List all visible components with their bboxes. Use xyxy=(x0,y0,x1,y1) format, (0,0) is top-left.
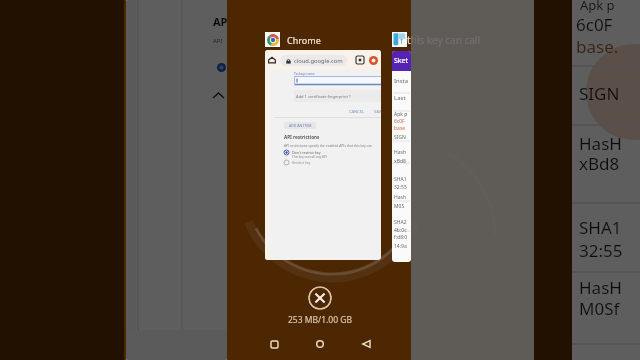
staticText: SHA1 xyxy=(579,216,622,239)
staticText: M0Sf xyxy=(579,297,620,320)
staticText: 4b:0c xyxy=(394,227,407,234)
staticText: Add 1 certificate fingerprint ? xyxy=(294,94,351,99)
staticText: base xyxy=(394,125,406,132)
staticText: 253 MB/1.00 GB xyxy=(255,314,385,326)
staticText: SAV xyxy=(374,109,381,114)
staticText: Package name xyxy=(294,72,315,76)
staticText: Last xyxy=(394,94,406,102)
staticText: 6c0F xyxy=(576,13,613,36)
staticText: HasH xyxy=(579,132,622,155)
staticText: SIGN xyxy=(394,134,406,141)
staticText: AP xyxy=(213,14,227,29)
staticText: CANCEL xyxy=(349,109,364,114)
staticText: Chrome xyxy=(287,34,321,46)
button[interactable]: Home xyxy=(308,332,332,356)
button[interactable]: Apk p xyxy=(572,0,640,360)
button[interactable]: cloud.google.com xyxy=(265,50,381,260)
staticText: xBd8 xyxy=(394,158,406,165)
staticText: Hash xyxy=(394,149,406,156)
staticText: API restrictions xyxy=(284,134,320,140)
button[interactable]: Recents xyxy=(262,332,286,356)
staticText: Apk p xyxy=(580,0,615,14)
staticText: Insta xyxy=(394,77,409,85)
staticText: base. xyxy=(576,35,619,58)
staticText: SIGN xyxy=(579,82,620,105)
button[interactable]: Sket xyxy=(392,51,411,262)
staticText: Don't restrict key xyxy=(292,150,321,155)
staticText: This key can call any API xyxy=(292,155,327,159)
staticText: ADD AN ITEM xyxy=(289,123,312,128)
button[interactable]: Close all apps xyxy=(308,286,332,310)
staticText: 32:55 xyxy=(394,184,407,191)
staticText: SHA2 xyxy=(394,219,407,226)
staticText: Apk p xyxy=(394,111,408,118)
staticText: API xyxy=(213,37,223,45)
button[interactable]: Back xyxy=(354,332,378,356)
staticText: SHA1 xyxy=(394,176,407,183)
staticText: Hash xyxy=(394,194,406,201)
button[interactable]: ADD AN ITEM xyxy=(284,122,316,129)
staticText: M0S xyxy=(394,203,405,210)
staticText: cloud.google.com xyxy=(294,57,343,65)
staticText: 14:9a xyxy=(394,243,407,250)
staticText: this key can call xyxy=(407,33,480,47)
staticText: f:d8:0 xyxy=(394,234,408,241)
staticText: 32:55 xyxy=(579,239,623,262)
staticText: Restrict key xyxy=(292,160,311,165)
staticText: 6c0F xyxy=(394,118,405,125)
staticText: Sket xyxy=(394,56,409,66)
staticText: API restrictions specify the enabled API… xyxy=(284,143,377,147)
staticText: HasH xyxy=(579,276,622,299)
staticText: xBd8 xyxy=(579,152,620,175)
button[interactable]: AP xyxy=(126,0,227,360)
